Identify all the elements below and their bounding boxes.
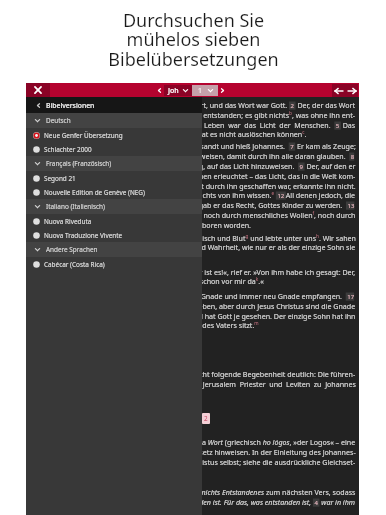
button[interactable]: Cabécar (Costa Rica) [26,257,202,271]
button[interactable]: Previous book [155,86,164,95]
staticText: Bezeichnung, mit der die Griechen auf di… [26,447,356,457]
button[interactable]: 1 [192,85,218,96]
staticText: Er, der das Wort ist, wurde ein Mensch v… [50,233,356,243]
staticText: seine Herrlichkeit, eine Herrlichkeit vo… [30,242,356,252]
staticText: Nuova Riveduta [44,217,92,226]
button[interactable]: Forward [345,84,358,97]
staticText: Nouvelle Edition de Genève (NEG) [44,188,145,197]
button[interactable]: Next chapter [218,86,227,95]
button[interactable]: Andere Sprachen [26,242,202,257]
staticText: ihn aufnahmen und an seinen Namen glaubt… [37,200,356,210]
staticText: a Wort (griechisch ho lógos, »der Logos«… [202,437,356,447]
button[interactable]: Nuova Riveduta [26,214,202,228]
staticText: Aus seinem unermesslichen Reichtum haben… [37,291,356,301]
staticText: Evangeliums wird damit auf Jesus Christu… [77,457,356,467]
staticText: Es trat ein Mensch auf, der von Gott ges… [71,141,356,151]
staticText: Wer Jesus ist und was er bringt, macht f… [82,369,356,379]
staticText: den Willen eines Mannes; sie sind aus Go… [50,220,251,230]
staticText: Denn das Gesetz wurde durch Mose gegeben… [64,301,356,311]
staticText: hinwies, war das wahre Licht, das jeden … [44,171,356,181]
staticText: und die Wahrheit gekommen. Niemand hat G… [71,311,356,321]
button[interactable]: Neue Genfer Übersetzung [26,128,202,142]
button[interactable]: Nouvelle Edition de Genève (NEG) [26,185,202,199]
button[interactable]: Bibelversionen [26,97,202,113]
staticText: men sollte. Er war in der Welt, aber obw… [32,181,356,191]
staticText: der nach mir kommt, ist größer als ich, … [27,276,264,286]
staticText: Licht leuchtet in der Finsternis, und di… [32,129,307,139]
button[interactable]: Deutsch [26,113,202,128]
staticText: uns offenbart, er, der an der Seite des … [89,320,259,330]
staticText: Andere Sprachen [46,245,98,254]
staticText: standen ist. In ihm war das Leben, und d… [54,120,356,130]
button[interactable]: Schlachter 2000 [26,142,202,156]
staticText: b Oder: und ohne ihn wurde nicht nichts … [92,487,356,497]
button[interactable]: Italiano (Italienisch) [26,199,202,214]
staticText: Segond 21 [44,174,76,183]
staticText: Er kam in sein Eigentum, doch die Seinen… [31,190,356,200]
staticText: Im Anfang war das Wort, und das Wort war… [125,100,356,110]
staticText: 2 [204,414,208,423]
staticText: 1 [198,86,203,96]
staticText: sich folgende Übersetzung ergibt: ... wa… [47,497,356,507]
staticText: Joh [168,86,179,96]
staticText: Nuova Traduzione Vivente [44,231,123,240]
staticText: er sollte als Zeuge auf das Licht hinwei… [83,151,356,161]
staticText: Sie wurden es nicht aufgrund ihrer Absta… [26,210,356,220]
staticText: Durchsuchen Sie mühelos sieben Bibelüber… [108,8,279,72]
staticText: Neue Genfer Übersetzung [44,131,123,140]
button[interactable]: Français (Französisch) [26,156,202,171]
staticText: Italiano (Italienisch) [46,202,105,211]
staticText: Schlachter 2000 [44,145,92,154]
staticText: von Gott, dem Vater, hat. Dieser ist es!… [97,267,356,277]
button[interactable]: Nuova Traduzione Vivente [26,228,202,242]
staticText: Deutsch [46,116,71,125]
staticText: Bibelversionen [46,101,95,110]
button[interactable]: Joh [164,85,192,96]
button[interactable]: Close [26,83,50,97]
staticText: Cabécar (Costa Rica) [44,260,105,269]
staticText: Er hatte nur den Auftrag, auf das Licht … [122,161,356,171]
button[interactable]: Segond 21 [26,171,202,185]
staticText: ist, war im Anfang bei Gott. Alles ist d… [50,110,356,120]
staticText: den Männer des jüdischen Volkes schickte… [43,379,356,389]
staticText: Français (Französisch) [46,159,112,168]
button[interactable]: Back [332,84,345,97]
button[interactable]: 2 [204,414,208,423]
